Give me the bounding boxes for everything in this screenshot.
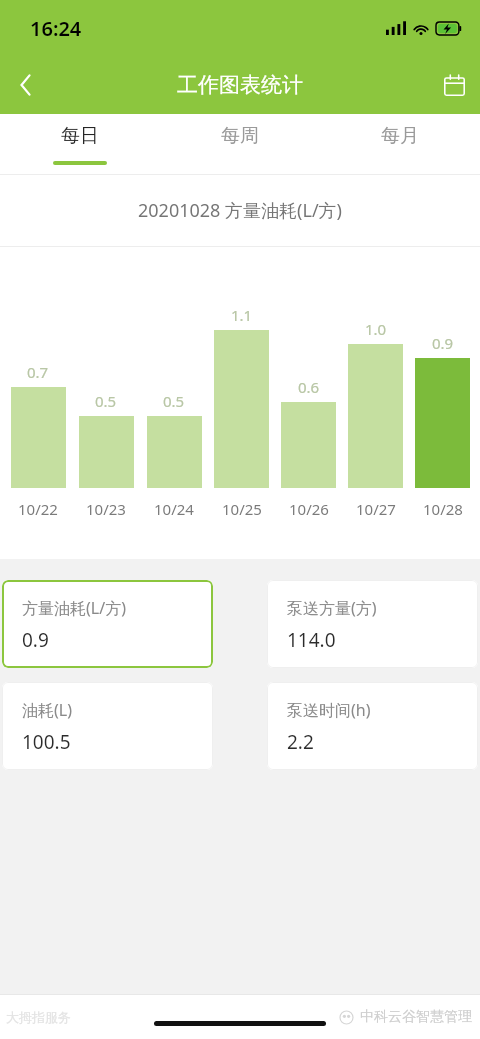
staticText: 0.9	[22, 627, 49, 653]
staticText: 114.0	[287, 627, 336, 653]
button[interactable]: 方量油耗(L/方)	[2, 580, 213, 668]
button[interactable]: Select date	[428, 59, 480, 111]
staticText: 20201028 方量油耗(L/方)	[138, 198, 342, 223]
staticText: 泵送方量(方)	[287, 597, 377, 619]
button[interactable]: 每月	[320, 114, 480, 174]
staticText: 2.2	[287, 729, 314, 755]
staticText: 10/22	[18, 499, 58, 519]
staticText: 0.5	[163, 391, 185, 411]
staticText: 0.9	[432, 333, 454, 353]
staticText: 方量油耗(L/方)	[22, 597, 126, 619]
staticText: 10/25	[222, 499, 262, 519]
staticText: 0.5	[95, 391, 117, 411]
staticText: 油耗(L)	[22, 699, 72, 721]
staticText: 每月	[381, 124, 419, 148]
staticText: 泵送时间(h)	[287, 699, 371, 721]
staticText: 1.0	[365, 319, 387, 339]
button[interactable]: 油耗(L)	[2, 682, 213, 770]
staticText: 100.5	[22, 729, 71, 755]
staticText: 每周	[221, 124, 259, 148]
staticText: 10/24	[154, 499, 194, 519]
staticText: 1.1	[231, 305, 253, 325]
staticText: 16:24	[30, 15, 82, 42]
button[interactable]: 泵送方量(方)	[267, 580, 478, 668]
staticText: 大拇指服务	[6, 1009, 71, 1025]
button[interactable]: Back	[0, 59, 52, 111]
staticText: 每日	[61, 124, 99, 148]
staticText: 10/28	[423, 499, 463, 519]
button[interactable]: 每周	[160, 114, 320, 174]
staticText: 0.6	[298, 377, 320, 397]
staticText: 0.7	[27, 362, 49, 382]
staticText: 10/23	[86, 499, 126, 519]
staticText: 10/26	[289, 499, 329, 519]
staticText: 10/27	[356, 499, 396, 519]
staticText: 中科云谷智慧管理	[360, 1008, 472, 1026]
button[interactable]: 泵送时间(h)	[267, 682, 478, 770]
staticText: 工作图表统计	[177, 72, 303, 98]
button[interactable]: 每日	[0, 114, 160, 174]
